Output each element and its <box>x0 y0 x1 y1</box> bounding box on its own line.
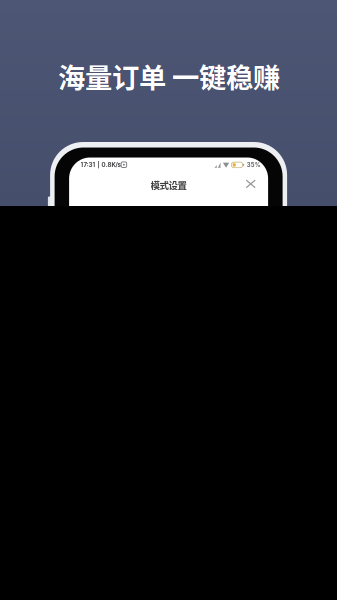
staticText: 模式设置 <box>151 178 187 192</box>
staticText: 35% <box>247 161 261 168</box>
button[interactable]: Close <box>239 173 263 195</box>
staticText: 海量订单 一键稳赚 <box>58 56 280 96</box>
staticText: 17:31 | 0.8K/s <box>80 161 120 168</box>
